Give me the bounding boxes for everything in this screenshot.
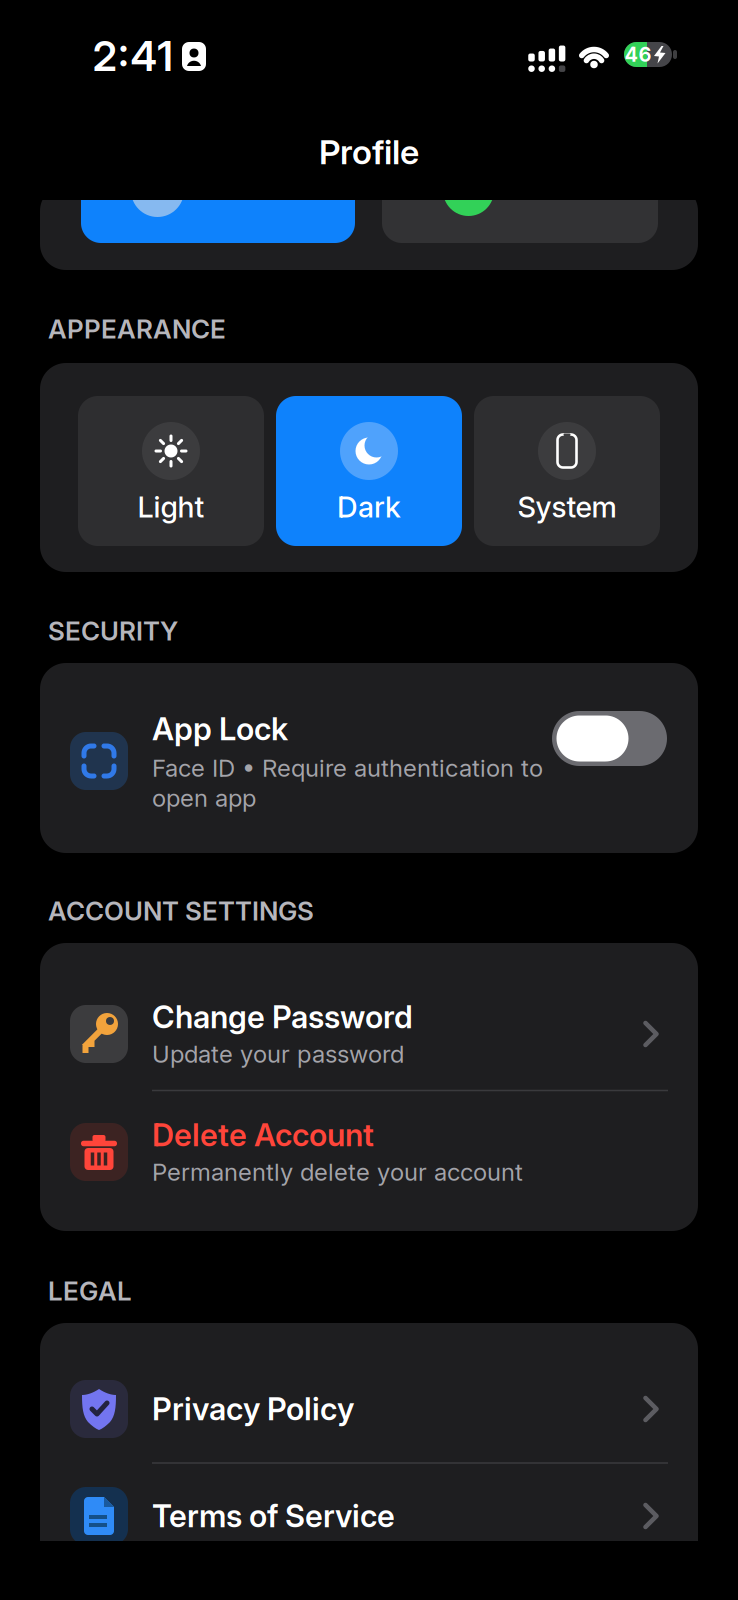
staticText: Dark	[337, 489, 401, 525]
staticText: Change Password	[152, 998, 413, 1036]
staticText: Update your password	[152, 1039, 404, 1068]
staticText: LEGAL	[48, 1275, 132, 1307]
button[interactable]: App Lock	[552, 711, 667, 766]
staticText: Face ID • Require authentication to	[152, 753, 543, 782]
button[interactable]: System	[474, 396, 660, 546]
staticText: open app	[152, 783, 256, 812]
staticText: 46	[624, 42, 651, 67]
button[interactable]: Delete Account	[40, 1091, 698, 1231]
staticText: ACCOUNT SETTINGS	[48, 895, 314, 927]
button[interactable]: Privacy Policy	[40, 1323, 698, 1463]
staticText: Privacy Policy	[152, 1390, 354, 1428]
button[interactable]: Change Password	[40, 943, 698, 1089]
button[interactable]: Dark	[276, 396, 462, 546]
staticText: Profile	[319, 131, 419, 172]
staticText: App Lock	[152, 710, 288, 748]
staticText: Terms of Service	[152, 1497, 395, 1535]
staticText: Light	[137, 489, 204, 525]
button[interactable]: Option 1	[81, 165, 355, 243]
staticText: Delete Account	[152, 1116, 374, 1154]
button[interactable]: Terms of Service	[40, 1463, 698, 1569]
staticText: SECURITY	[48, 615, 178, 647]
staticText: System	[517, 489, 616, 525]
staticText: 2:41	[93, 31, 173, 81]
button[interactable]: Option 2	[382, 165, 658, 243]
button[interactable]: Light	[78, 396, 264, 546]
staticText: Permanently delete your account	[152, 1157, 523, 1186]
staticText: APPEARANCE	[48, 313, 226, 345]
